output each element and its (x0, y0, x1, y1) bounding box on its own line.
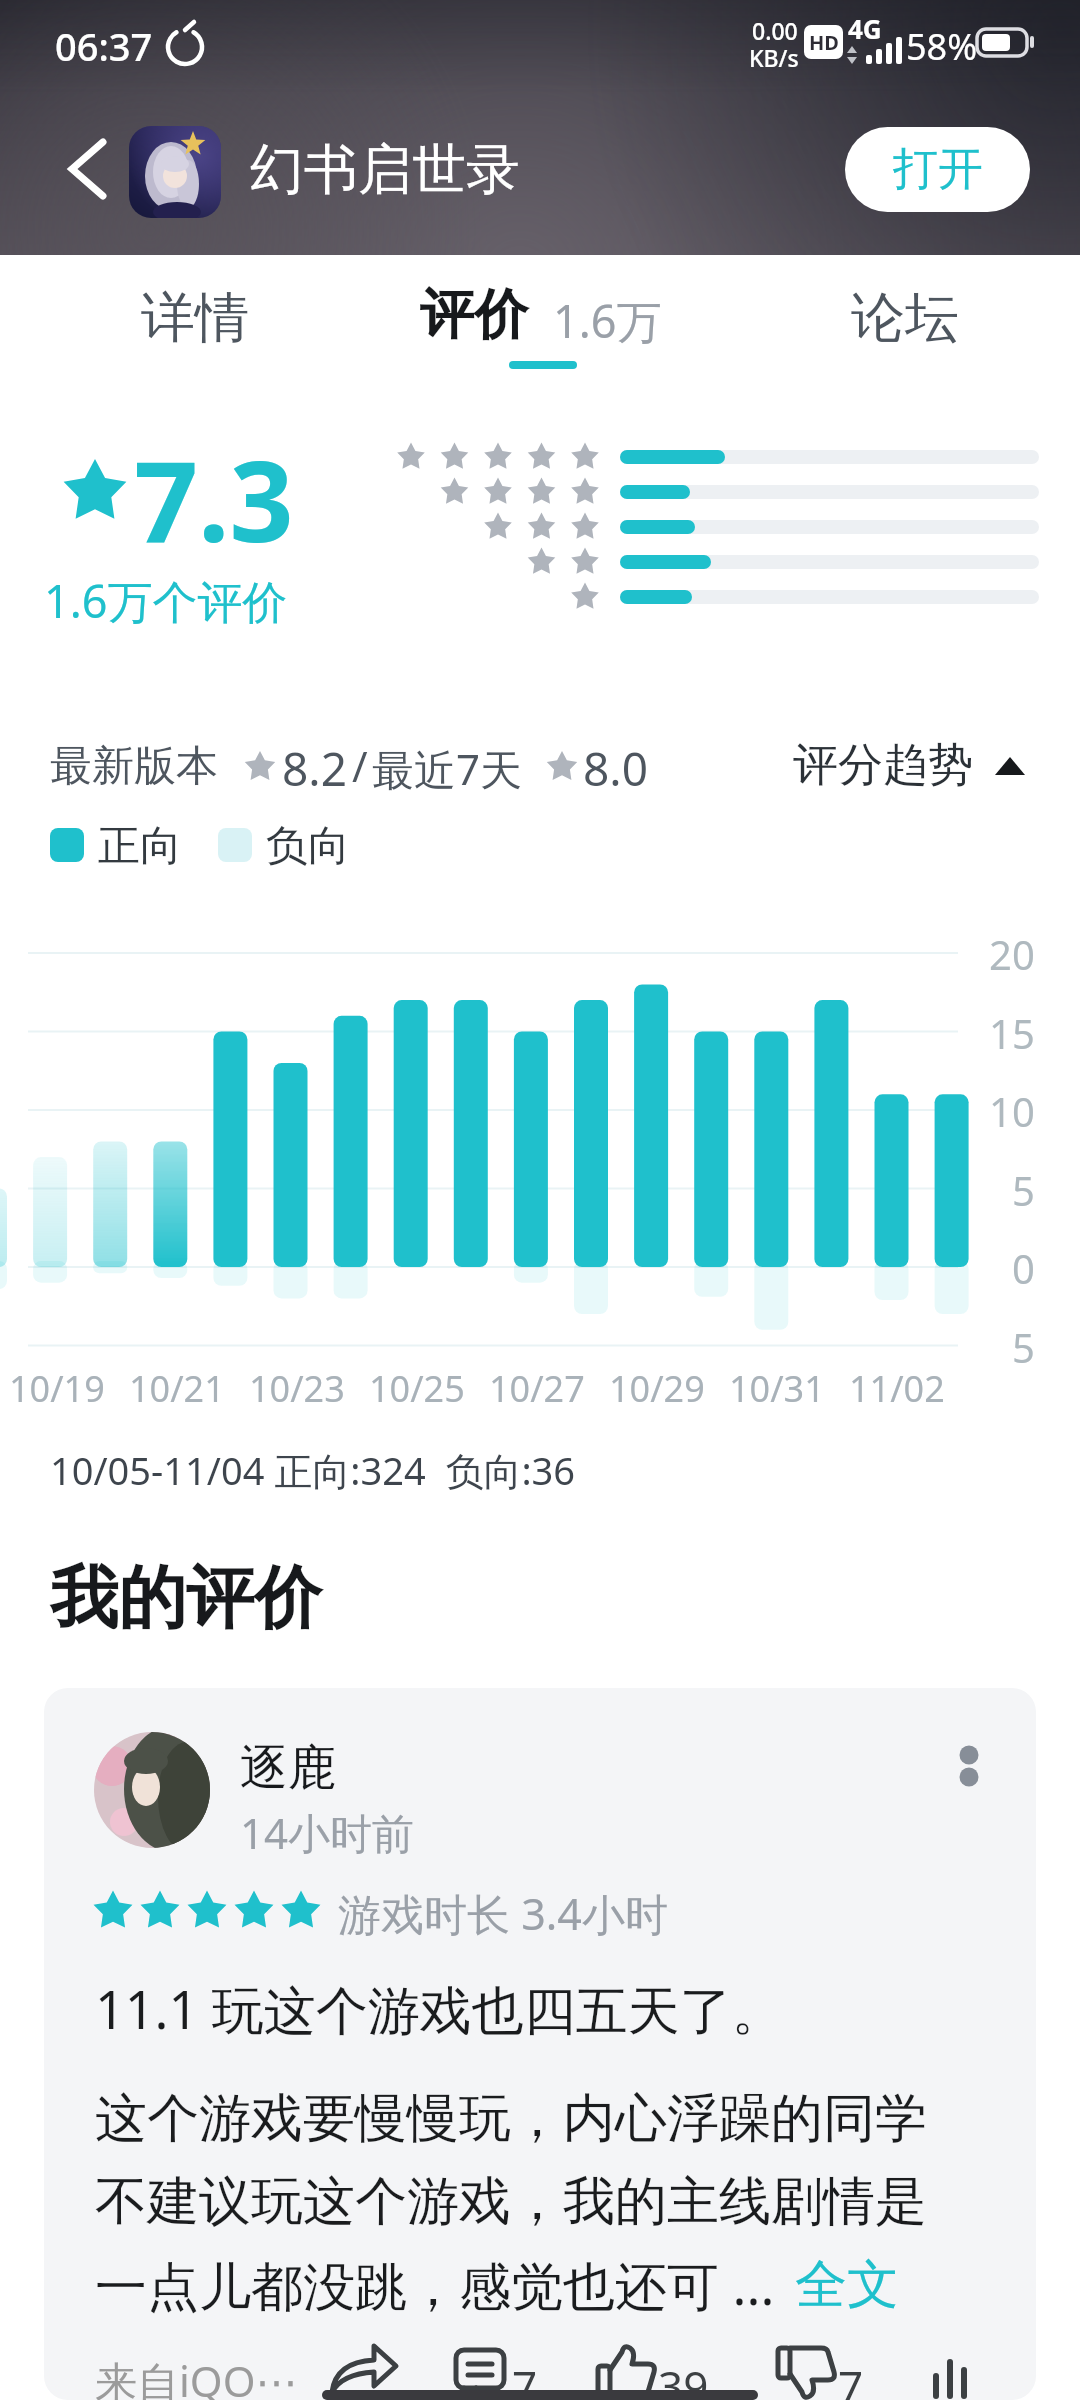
staticText: 06:37 (55, 20, 153, 72)
button[interactable]: 打开 (845, 127, 1030, 212)
staticText: 58% (906, 22, 978, 71)
staticText: KB/s (749, 42, 799, 73)
staticText: 10/31 (729, 1364, 825, 1413)
staticText: 15 (989, 1006, 1035, 1058)
staticText: 10/27 (489, 1364, 585, 1413)
staticText: 5 (1012, 1320, 1035, 1372)
staticText: 最近7天 (372, 740, 523, 797)
staticText: 我的评价 (50, 1556, 322, 1642)
staticText: 11.1 玩这个游戏也四五天了。 (95, 1973, 784, 2044)
staticText: 最新版本 (50, 740, 218, 793)
staticText: 39 (658, 2356, 709, 2400)
staticText: 0.00 (752, 15, 798, 46)
button[interactable]: 评分趋势 (780, 735, 1040, 799)
staticText: 10 (989, 1084, 1035, 1136)
staticText: 10/29 (609, 1364, 705, 1413)
staticText: 评价 (420, 281, 528, 349)
staticText: 详情 (141, 284, 249, 352)
button[interactable] (94, 1732, 210, 1848)
staticText: 正向 (98, 820, 182, 873)
staticText: 7 (838, 2356, 864, 2400)
button[interactable]: 评价 (400, 273, 680, 363)
staticText: 10/05-11/04 正向:324 负向:36 (50, 1444, 576, 1496)
staticText: 10/23 (249, 1364, 345, 1413)
staticText: 7 (512, 2356, 538, 2400)
button[interactable]: 详情 (100, 273, 290, 363)
staticText: 10/25 (369, 1364, 465, 1413)
staticText: 8.0 (583, 737, 648, 800)
staticText: 0 (1012, 1241, 1035, 1293)
staticText: 14小时前 (240, 1804, 415, 1861)
staticText: 1.6万 (553, 290, 662, 351)
staticText: 打开 (893, 141, 983, 198)
staticText: / (352, 737, 368, 794)
staticText: 论坛 (851, 284, 959, 352)
staticText: 游戏时长 3.4小时 (338, 1884, 668, 1943)
staticText: 1.6万个评价 (44, 570, 288, 631)
staticText: 来自iQO⋯ (95, 2352, 298, 2400)
staticText: 负向 (266, 820, 350, 873)
staticText: 评分趋势 (793, 737, 973, 794)
staticText: 这个游戏要慢慢玩，内心浮躁的同学 不建议玩这个游戏，我的主线剧情是 一点儿都没跳… (95, 2086, 927, 2321)
staticText: 10/19 (9, 1364, 105, 1413)
staticText: 5 (1012, 1163, 1035, 1215)
staticText: HD (809, 29, 839, 56)
staticText: 4G (848, 11, 882, 46)
staticText: 逐鹿 (240, 1738, 336, 1798)
staticText: 20 (989, 927, 1035, 979)
staticText: 幻书启世录 (250, 136, 520, 204)
button[interactable]: 全文 (795, 2252, 899, 2318)
button[interactable]: 论坛 (810, 273, 1000, 363)
button[interactable] (129, 126, 221, 218)
staticText: 10/21 (129, 1364, 225, 1413)
staticText: 8.2 (282, 737, 347, 800)
staticText: 11/02 (849, 1364, 945, 1413)
staticText: 7.3 (134, 422, 294, 575)
